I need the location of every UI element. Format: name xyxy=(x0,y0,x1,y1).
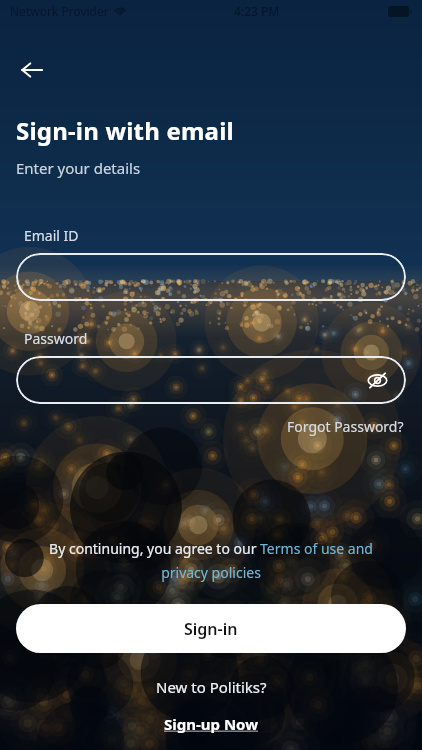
button[interactable]: Sign-in xyxy=(16,604,406,653)
staticText: Sign-in with email xyxy=(16,114,234,147)
button[interactable]: Back xyxy=(14,52,50,88)
staticText: Enter your details xyxy=(16,158,141,178)
button[interactable]: By continuing, you agree to our Terms of… xyxy=(36,539,386,582)
button[interactable] xyxy=(16,253,406,301)
button[interactable]: Show password xyxy=(16,356,406,404)
staticText: Forgot Password? xyxy=(287,417,404,436)
button[interactable]: Forgot Password? xyxy=(285,414,406,439)
staticText: Password xyxy=(24,329,88,348)
staticText: Email ID xyxy=(24,226,79,245)
staticText: Network Provider xyxy=(10,3,109,19)
staticText: New to Politiks? xyxy=(156,677,267,697)
staticText: Sign-in xyxy=(184,618,238,640)
staticText: 4:23 PM xyxy=(234,3,280,19)
staticText: Sign-up Now xyxy=(164,714,259,734)
staticText: By continuing, you agree to our Terms of… xyxy=(36,539,386,582)
button[interactable]: Show password xyxy=(362,365,392,395)
button[interactable]: Sign-up Now xyxy=(158,712,265,736)
